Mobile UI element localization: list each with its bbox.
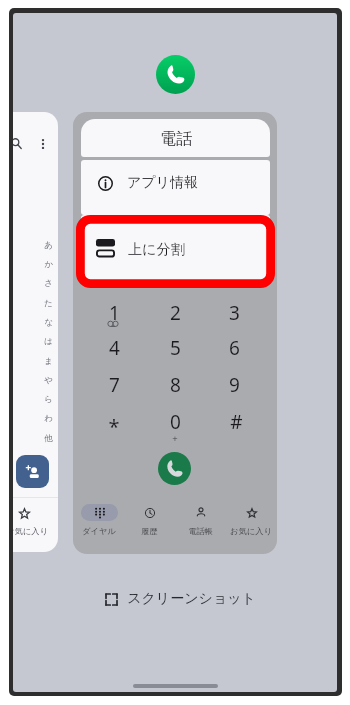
button[interactable]: スクリーンショット [105,590,256,608]
button[interactable]: 電話帳 [176,504,224,536]
button[interactable]: 0 [153,406,197,438]
staticText: わ [44,413,53,424]
button[interactable]: アプリ情報 [81,160,270,215]
staticText: スクリーンショット [127,590,256,608]
button[interactable]: 4 [92,332,136,364]
button[interactable]: # [214,406,258,438]
staticText: 7 [109,372,120,398]
staticText: や [44,375,53,386]
staticText: さ [44,278,53,289]
staticText: お気に入り [230,526,272,536]
staticText: 電話 [160,129,192,149]
staticText: 3 [229,300,240,326]
button[interactable]: 3 [212,297,256,329]
button[interactable]: Call [158,452,191,485]
staticText: 5 [170,335,181,361]
button[interactable]: 7 [92,369,136,401]
button[interactable]: 9 [212,369,256,401]
staticText: アプリ情報 [127,174,198,192]
button[interactable]: Phone app [156,55,195,94]
button[interactable]: * [92,410,136,442]
staticText: 電話帳 [188,526,213,536]
staticText: な [44,317,53,328]
staticText: 履歴 [141,526,158,536]
button[interactable]: 履歴 [125,504,173,536]
staticText: か [44,259,53,270]
staticText: ま [44,356,53,367]
button[interactable]: お気に入り [227,504,275,536]
staticText: 0 [170,409,181,435]
staticText: お気に入り [13,526,48,536]
staticText: た [44,298,53,309]
staticText: ダイヤル [82,526,116,536]
staticText: # [230,409,243,435]
staticText: 6 [229,335,240,361]
button[interactable]: 8 [153,369,197,401]
staticText: 2 [170,300,181,326]
staticText: * [108,413,120,440]
staticText: 上に分割 [128,241,185,259]
button[interactable]: Add contact [16,455,49,488]
staticText: + [172,432,178,445]
button[interactable]: 5 [153,332,197,364]
staticText: は [44,336,53,347]
staticText: 9 [229,372,240,398]
button[interactable]: 2 [153,297,197,329]
button[interactable]: 6 [212,332,256,364]
staticText: 4 [109,335,120,361]
staticText: あ [44,240,53,251]
staticText: 8 [170,372,181,398]
button[interactable]: ダイヤル [75,504,123,536]
staticText: 1 [109,300,120,326]
button[interactable]: 1 [92,297,136,329]
staticText: 他 [44,433,53,444]
button[interactable]: 上に分割 [81,215,270,282]
staticText: ら [44,394,53,405]
